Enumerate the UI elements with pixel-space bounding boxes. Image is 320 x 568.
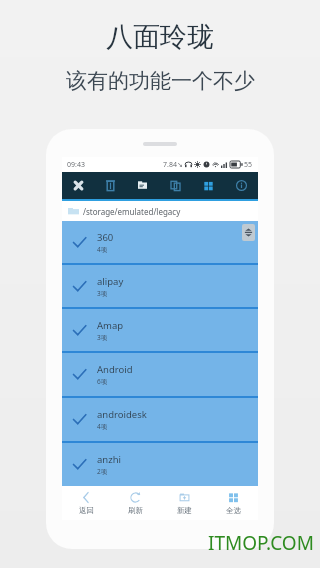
button[interactable]: 360 — [62, 221, 258, 263]
staticText: Android — [97, 363, 133, 376]
staticText: 全选 — [226, 506, 241, 515]
button[interactable]: 刷新 — [111, 486, 160, 520]
staticText: 09:43 — [67, 160, 85, 170]
button[interactable]: alipay — [62, 265, 258, 307]
button[interactable]: 返回 — [62, 486, 111, 520]
staticText: 6项 — [97, 377, 108, 386]
staticText: ITMOP.COM — [208, 530, 314, 556]
staticText: 4项 — [97, 245, 108, 254]
button[interactable]: Scroll — [242, 224, 255, 241]
staticText: 返回 — [79, 506, 94, 515]
button[interactable]: 新建 — [160, 486, 209, 520]
button[interactable]: 全选 — [209, 486, 258, 520]
staticText: /storage/emulated/legacy — [83, 206, 181, 217]
button[interactable]: Folder — [126, 172, 159, 199]
button[interactable]: Delete — [94, 172, 126, 199]
button[interactable]: Info — [225, 172, 258, 199]
staticText: 八面玲珑 — [106, 20, 214, 54]
button[interactable]: androidesk — [62, 398, 258, 441]
staticText: 7.84↘ — [163, 160, 183, 170]
staticText: Amap — [97, 319, 124, 332]
staticText: 该有的功能一个不少 — [66, 68, 255, 94]
staticText: alipay — [97, 275, 124, 288]
staticText: 55 — [244, 160, 253, 170]
staticText: 3项 — [97, 333, 108, 342]
button[interactable]: Close — [62, 172, 94, 199]
staticText: 4项 — [97, 422, 108, 431]
button[interactable]: Android — [62, 353, 258, 396]
staticText: 360 — [97, 231, 114, 244]
button[interactable]: /storage/emulated/legacy — [68, 201, 258, 221]
staticText: 2项 — [97, 467, 108, 476]
staticText: 新建 — [177, 506, 192, 515]
button[interactable]: Copy — [159, 172, 192, 199]
staticText: 3项 — [97, 289, 108, 298]
staticText: 刷新 — [128, 506, 143, 515]
staticText: anzhi — [97, 453, 121, 466]
staticText: androidesk — [97, 408, 147, 421]
button[interactable]: Amap — [62, 309, 258, 351]
button[interactable]: Grid view — [192, 172, 225, 199]
button[interactable]: anzhi — [62, 443, 258, 486]
